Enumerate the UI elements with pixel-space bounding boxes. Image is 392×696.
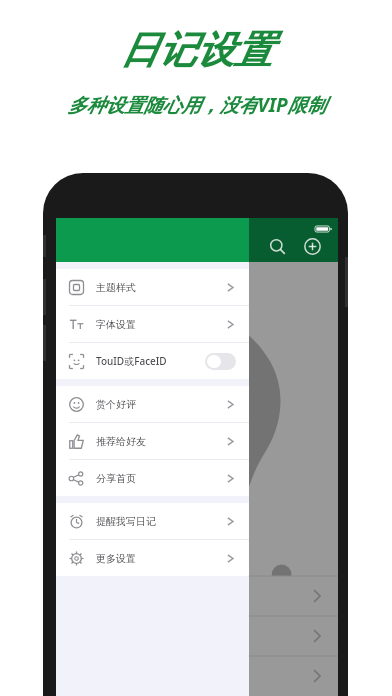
staticText: 赏个好评 (96, 398, 136, 411)
button[interactable]: 字体设置 (56, 306, 249, 342)
staticText: 主题样式 (96, 281, 136, 294)
button[interactable]: 提醒我写日记 (56, 503, 249, 539)
staticText: 分享首页 (96, 472, 136, 485)
button[interactable]: Add (298, 232, 326, 260)
button[interactable]: 赏个好评 (56, 386, 249, 422)
staticText: 字体设置 (96, 318, 136, 331)
button[interactable]: 分享首页 (56, 460, 249, 496)
staticText: 更多设置 (96, 552, 136, 565)
staticText: TouID或FaceID (96, 354, 167, 368)
button[interactable]: 推荐给好友 (56, 423, 249, 459)
staticText: 日记设置 (120, 26, 272, 74)
staticText: 多种设置随心用，没有VIP限制 (67, 92, 326, 118)
button[interactable]: 更多设置 (56, 540, 249, 576)
staticText: 提醒我写日记 (96, 515, 156, 528)
button[interactable]: Search (263, 232, 291, 260)
button[interactable]: 主题样式 (56, 269, 249, 305)
staticText: 推荐给好友 (96, 435, 146, 448)
button[interactable]: TouID或FaceID (56, 343, 249, 379)
